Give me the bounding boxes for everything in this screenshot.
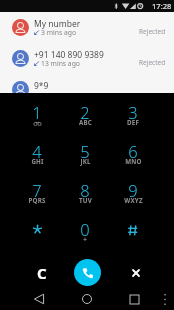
button[interactable]: More options [155,288,174,310]
staticText: +91 140 890 9389 [34,49,104,61]
button[interactable]: 7 [13,179,61,218]
button[interactable]: Recents [122,288,147,310]
button[interactable]: 9*9 [0,74,174,93]
staticText: 13 mins ago [41,59,80,68]
button[interactable]: My number [0,12,174,43]
button[interactable]: Home [74,288,99,310]
button[interactable]: 4 [13,140,61,179]
staticText: 8 [80,179,90,201]
staticText: 17:28 [152,1,172,11]
button[interactable]: +91 140 890 9389 [0,43,174,74]
button[interactable]: 9 [109,179,157,218]
staticText: 3 mins ago [41,28,77,37]
button[interactable] [109,218,157,257]
button[interactable]: 0 [61,218,109,257]
staticText: C [37,263,47,283]
button[interactable]: Clear [25,257,59,288]
button[interactable]: 5 [61,140,109,179]
button[interactable] [13,218,61,257]
button[interactable]: 3 [109,101,157,140]
staticText: 6 [128,140,138,162]
staticText: Rejected [139,58,166,67]
staticText: MNO [125,157,142,165]
staticText: GHI [31,157,44,165]
staticText: 9*9 [34,80,49,92]
staticText: WXYZ [124,196,143,204]
button[interactable]: Back [26,288,51,310]
staticText: 1 [32,101,42,123]
staticText: 2 [80,101,90,123]
staticText: My number [34,18,81,30]
button[interactable]: Close [119,257,153,288]
staticText: 3 [128,101,138,123]
staticText: 9 [128,179,138,201]
button[interactable]: Call [74,259,101,286]
staticText: 7 [32,179,42,201]
staticText: 5 [80,140,90,162]
staticText: Rejected [139,27,166,36]
staticText: PQRS [28,196,46,204]
staticText: DEF [127,118,139,126]
staticText: TUV [79,196,92,204]
button[interactable]: 1 [13,101,61,140]
staticText: JKL [80,157,91,165]
staticText: 4 [32,140,42,162]
button[interactable]: 2 [61,101,109,140]
button[interactable]: 8 [61,179,109,218]
staticText: ABC [79,118,92,126]
staticText: 0 [80,218,90,240]
button[interactable]: 6 [109,140,157,179]
staticText: + [83,235,87,243]
